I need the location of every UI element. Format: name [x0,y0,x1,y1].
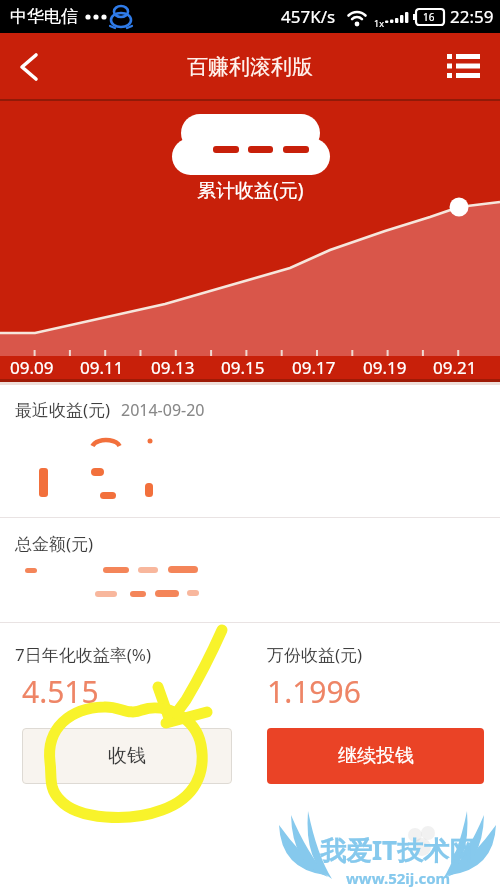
staticText: 1.1996 [267,671,361,712]
staticText: 457K/s [281,5,336,28]
button[interactable]: 继续投钱 [267,728,484,784]
staticText: 16 [423,10,435,24]
staticText: 09.11 [80,356,124,379]
staticText: 最近收益(元) [15,398,111,421]
staticText: 百赚利滚利版 [187,54,313,80]
staticText: 2014-09-20 [121,399,205,421]
staticText: 09.15 [221,356,265,379]
staticText: 7日年化收益率(%) [15,643,152,666]
staticText: 1x [374,17,384,29]
staticText: www.52ij.com [346,868,451,888]
staticText: 继续投钱 [338,744,414,768]
staticText: 中华电信 [10,6,78,27]
staticText: 万份收益(元) [267,643,363,666]
staticText: 09.13 [151,356,195,379]
staticText: 09.19 [363,356,407,379]
staticText: 4.515 [22,671,99,712]
button[interactable]: 最近收益(元) [0,382,500,517]
staticText: 我爱IT技术网 [320,832,476,868]
staticText: 累计收益(元) [197,177,304,203]
button[interactable] [0,33,56,101]
button[interactable]: 总金额(元) [0,518,500,622]
staticText: 收钱 [108,744,146,768]
button[interactable]: 收钱 [22,728,232,784]
staticText: 09.17 [292,356,336,379]
staticText: 22:59 [450,5,494,28]
staticText: 09.21 [433,356,477,379]
staticText: 09.09 [10,356,54,379]
button[interactable] [444,33,500,101]
staticText: 总金额(元) [15,532,94,555]
